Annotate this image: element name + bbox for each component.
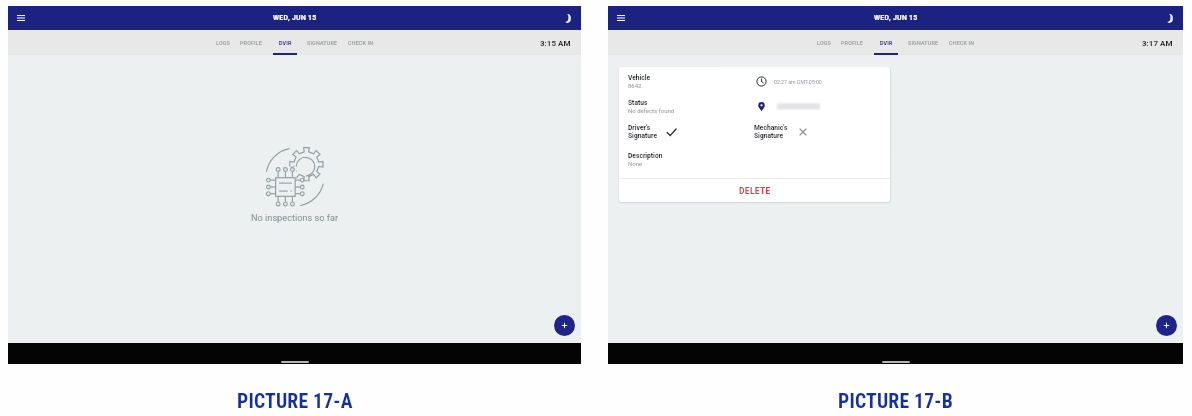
button[interactable]: Toggle night mode xyxy=(560,12,573,25)
staticText: WED, JUN 15 xyxy=(273,14,317,22)
staticText: 3:15 AM xyxy=(540,39,571,48)
staticText: PROFILE xyxy=(841,40,864,46)
staticText: WED, JUN 15 xyxy=(874,14,918,22)
button[interactable]: CHECK IN xyxy=(343,30,379,55)
staticText: PROFILE xyxy=(240,40,263,46)
staticText: LOGS xyxy=(216,40,230,46)
staticText: PICTURE 17-B xyxy=(838,390,953,412)
staticText: SIGNATURE xyxy=(908,40,939,46)
button[interactable]: Open navigation menu xyxy=(14,11,28,25)
button[interactable]: LOGS xyxy=(812,30,836,55)
staticText: 8642 xyxy=(628,82,642,89)
staticText: Signature xyxy=(628,132,658,140)
button[interactable]: PROFILE xyxy=(235,30,268,55)
staticText: Mechanic's xyxy=(754,124,788,132)
staticText: 3:17 AM xyxy=(1142,39,1173,48)
staticText: No defects found xyxy=(628,107,675,114)
staticText: Description xyxy=(628,152,663,160)
button[interactable]: Add inspection xyxy=(1156,315,1177,336)
button[interactable]: DVIR xyxy=(268,30,302,55)
button[interactable]: SIGNATURE xyxy=(903,30,944,55)
staticText: CHECK IN xyxy=(348,40,374,46)
staticText: DVIR xyxy=(279,40,292,46)
button[interactable]: Toggle night mode xyxy=(1162,12,1175,25)
staticText: Status xyxy=(628,99,648,107)
button[interactable]: LOGS xyxy=(211,30,235,55)
staticText: LOGS xyxy=(817,40,831,46)
staticText: SIGNATURE xyxy=(307,40,338,46)
staticText: DELETE xyxy=(739,186,771,196)
staticText: Driver's xyxy=(628,124,651,132)
staticText: Vehicle xyxy=(628,74,651,82)
staticText: None xyxy=(628,160,643,167)
staticText: 02:27 am GMT-05:00 xyxy=(774,79,822,85)
staticText: CHECK IN xyxy=(949,40,975,46)
button[interactable]: Add inspection xyxy=(554,315,575,336)
button[interactable]: DVIR xyxy=(869,30,903,55)
staticText: No inspections so far xyxy=(251,212,339,223)
button[interactable]: SIGNATURE xyxy=(302,30,343,55)
staticText: DVIR xyxy=(880,40,893,46)
staticText: PICTURE 17-A xyxy=(237,390,353,412)
button[interactable]: CHECK IN xyxy=(944,30,980,55)
staticText: Signature xyxy=(754,132,784,140)
button[interactable]: DELETE xyxy=(619,179,890,202)
button[interactable]: PROFILE xyxy=(836,30,869,55)
button[interactable]: Open navigation menu xyxy=(614,11,628,25)
